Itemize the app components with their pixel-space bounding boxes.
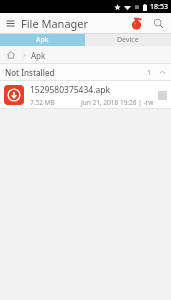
staticText: 18:53 xyxy=(150,2,168,12)
button[interactable]: 1529580375434.apk xyxy=(0,81,171,109)
staticText: Not Installed xyxy=(5,67,55,78)
staticText: 7.52 MB xyxy=(30,98,55,107)
staticText: Device xyxy=(117,35,139,45)
staticText: 1529580375434.apk xyxy=(30,84,111,96)
button[interactable]: Apk xyxy=(0,34,85,46)
button[interactable]: Open navigation menu xyxy=(0,13,21,34)
button[interactable]: Clean junk files xyxy=(125,13,147,34)
staticText: Jun 21, 2018 19:26 | -rw xyxy=(81,98,154,107)
staticText: File Manager xyxy=(21,16,89,31)
button[interactable]: Apk xyxy=(0,46,171,64)
staticText: Apk xyxy=(31,50,46,61)
staticText: 1 xyxy=(147,68,152,78)
button[interactable]: Search xyxy=(147,13,169,34)
button[interactable]: Device xyxy=(85,34,171,46)
button[interactable]: Not Installed xyxy=(0,64,171,81)
staticText: Apk xyxy=(36,35,49,45)
